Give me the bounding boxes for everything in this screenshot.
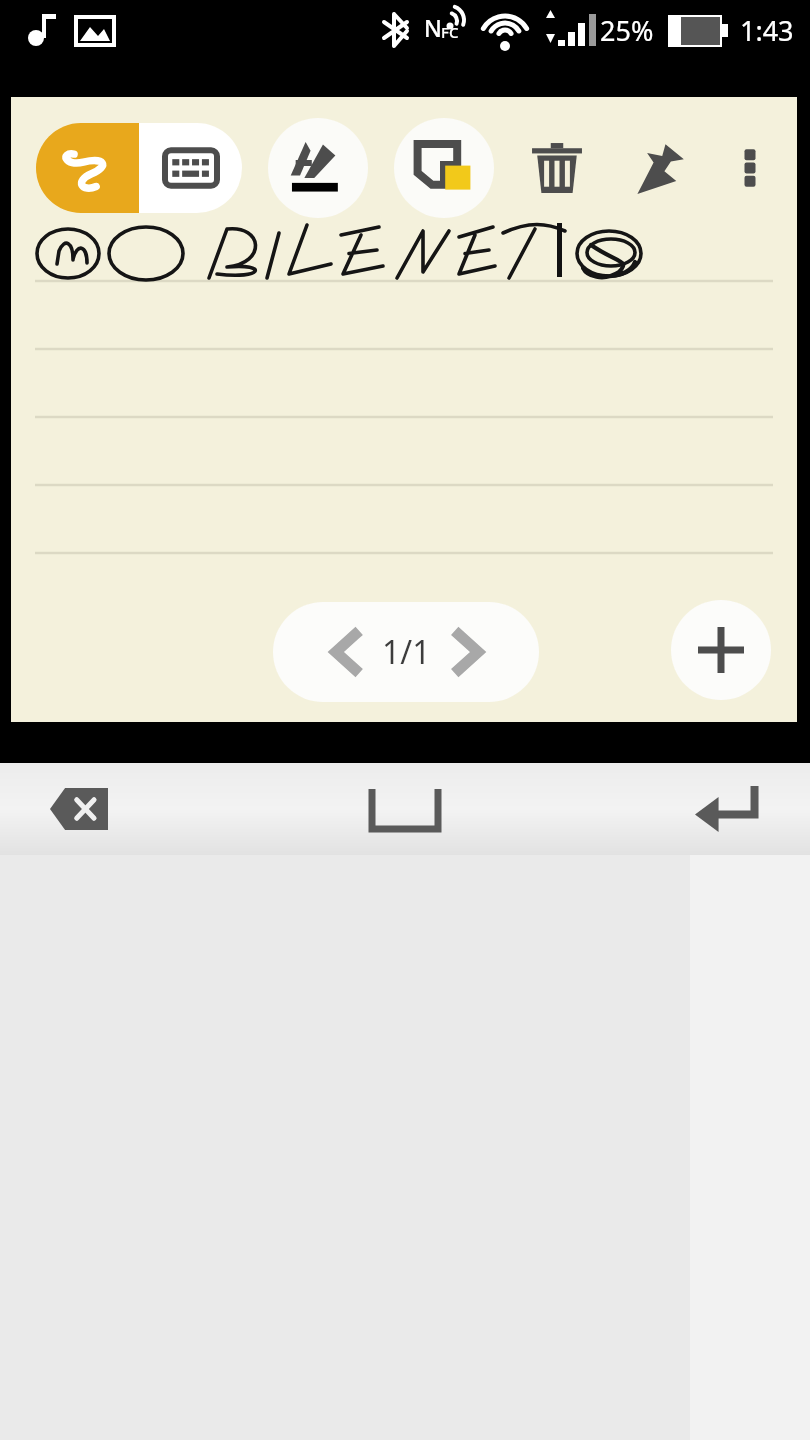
button[interactable]: Backspace [48,783,110,835]
button[interactable]: More options [710,128,790,208]
staticText: N [424,12,442,43]
staticText: 1/1 [382,630,431,674]
button[interactable]: 1/1 [273,602,539,702]
button[interactable]: Pen settings [268,118,368,218]
button[interactable]: Add page [671,600,771,700]
button[interactable]: Enter [690,781,762,837]
button[interactable]: Note color [394,118,494,218]
staticText: 25% [600,12,654,49]
staticText: FC [441,22,459,42]
button[interactable]: Handwriting mode [36,123,139,213]
button[interactable]: Pin [614,123,704,213]
button[interactable]: Space [360,779,450,839]
button[interactable]: Delete [512,123,602,213]
button[interactable]: Keyboard mode [139,123,242,213]
staticText: 1:43 [740,12,794,49]
